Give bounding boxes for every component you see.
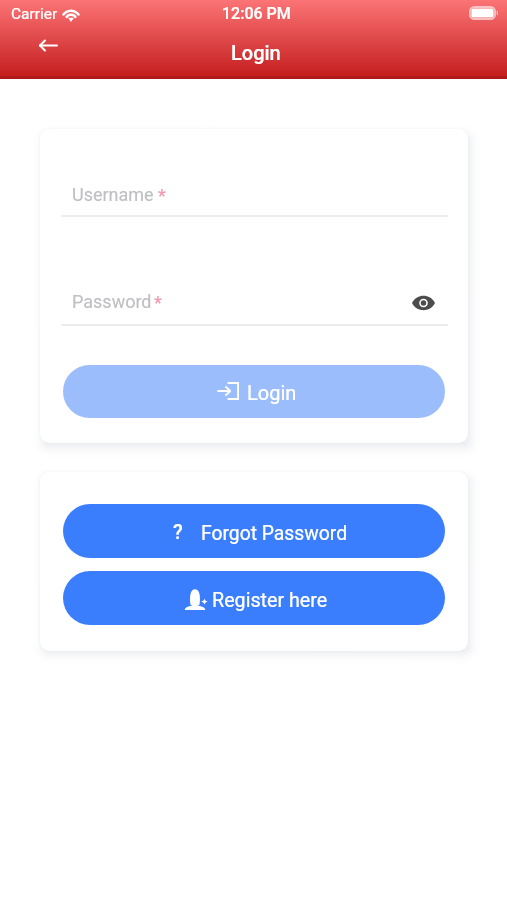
button[interactable]: Back (31, 28, 66, 62)
button[interactable]: Login (63, 365, 445, 418)
staticText: Password (72, 291, 152, 312)
staticText: * (158, 185, 166, 206)
button[interactable]: Show password (406, 288, 440, 318)
staticText: 12:06 PM (222, 4, 291, 23)
staticText: Carrier (11, 5, 58, 23)
button[interactable]: Register here (63, 571, 445, 625)
button[interactable]: Forgot password (63, 504, 445, 558)
staticText: * (154, 292, 162, 313)
staticText: ? (173, 520, 183, 543)
staticText: Username (72, 184, 154, 205)
staticText: Forgot Password (201, 522, 348, 545)
staticText: Login (231, 41, 281, 64)
staticText: Login (247, 381, 297, 404)
staticText: Register here (212, 589, 328, 612)
